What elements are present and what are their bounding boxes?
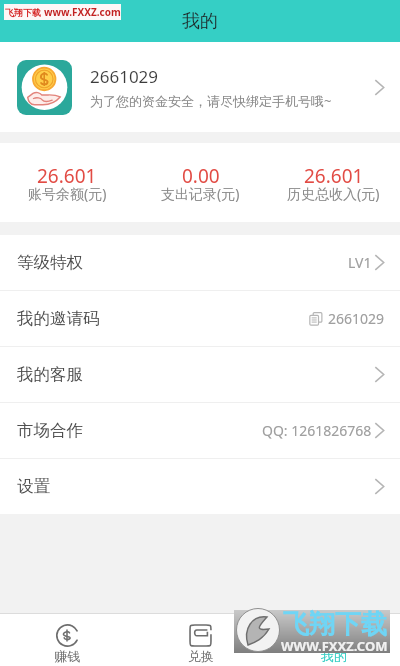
staticText: 26.601 <box>37 163 97 189</box>
other: 兑换 <box>189 624 212 647</box>
staticText: 等级特权 <box>17 252 83 273</box>
staticText: 为了您的资金安全，请尽快绑定手机号哦~ <box>90 92 332 110</box>
staticText: 26.601 <box>304 163 364 189</box>
staticText: QQ: 1261826768 <box>262 421 372 440</box>
staticText: 我的 <box>182 10 218 33</box>
staticText: 历史总收入(元) <box>287 184 380 203</box>
button[interactable]: 赚钱 <box>0 614 134 666</box>
button[interactable]: 0.00 <box>134 143 267 222</box>
staticText: 支出记录(元) <box>161 184 240 203</box>
other: Copy <box>309 312 323 326</box>
button[interactable]: 设置 <box>0 459 400 514</box>
button[interactable]: 市场合作 <box>0 403 400 458</box>
staticText: 飞翔下载 <box>5 7 41 18</box>
button[interactable]: 等级特权 <box>0 235 400 290</box>
staticText: 我的客服 <box>17 364 83 385</box>
button[interactable]: 26.601 <box>0 143 134 222</box>
staticText: 账号余额(元) <box>28 184 107 203</box>
button[interactable]: 26.601 <box>267 143 400 222</box>
staticText: 市场合作 <box>17 420 83 441</box>
staticText: 赚钱 <box>54 648 80 664</box>
staticText: 0.00 <box>182 163 220 189</box>
staticText: 2661029 <box>328 309 385 328</box>
button[interactable]: 我的 <box>267 614 400 666</box>
button[interactable]: 兑换 <box>134 614 267 666</box>
button[interactable]: 2661029 <box>0 42 400 132</box>
staticText: 我的 <box>321 648 347 664</box>
staticText: LV1 <box>348 253 372 272</box>
staticText: 2661029 <box>90 65 159 88</box>
staticText: 我的邀请码 <box>17 308 100 329</box>
staticText: www.FXXZ.com <box>44 5 121 19</box>
staticText: 兑换 <box>188 648 214 664</box>
button[interactable]: 我的邀请码 <box>0 291 400 346</box>
staticText: 设置 <box>17 476 50 497</box>
staticText: WWW.FXXZ.COM <box>281 637 388 655</box>
staticText: 飞翔下载 <box>283 608 387 641</box>
button[interactable]: 我的客服 <box>0 347 400 402</box>
other: 赚钱 <box>56 624 79 647</box>
